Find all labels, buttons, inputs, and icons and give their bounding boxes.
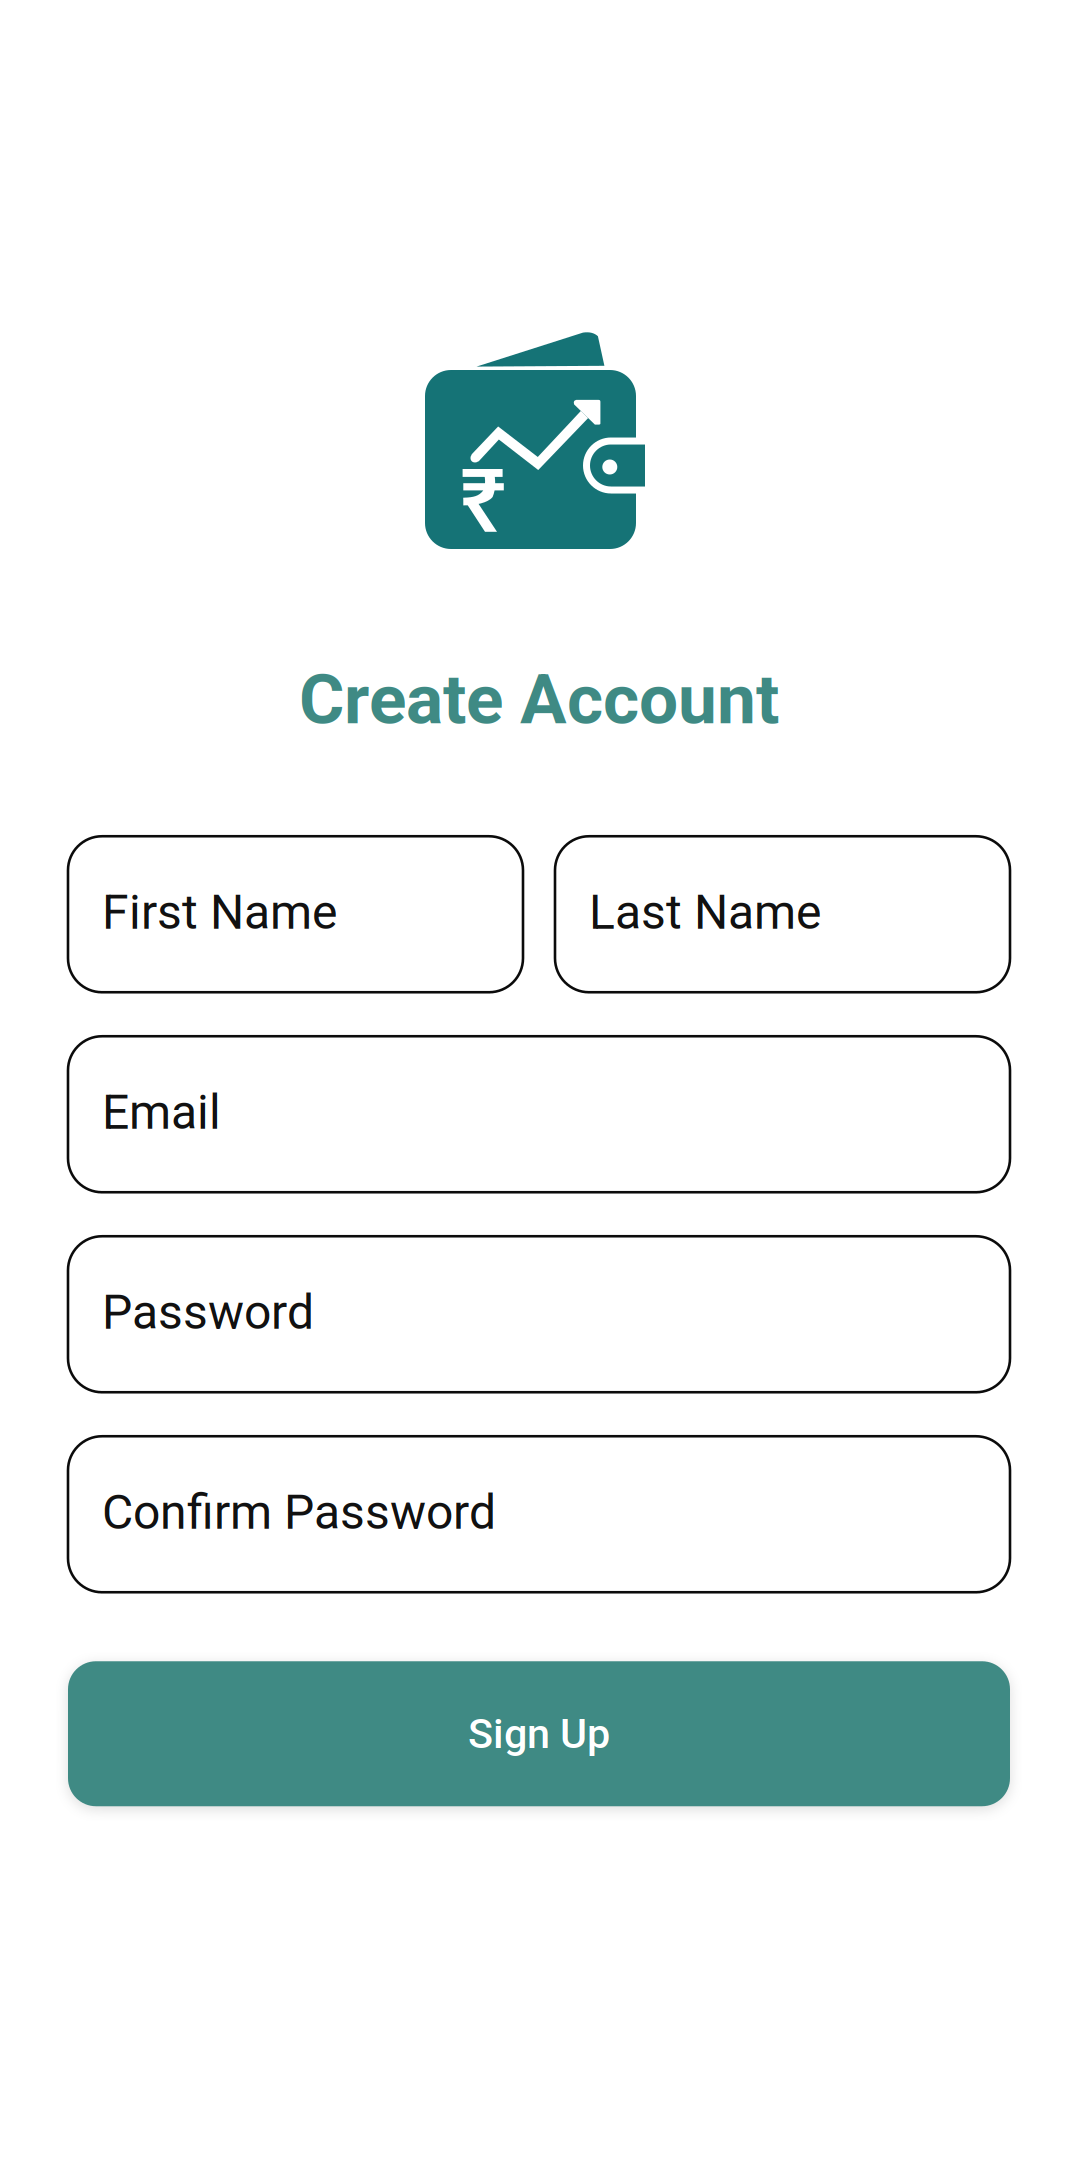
staticText: Password bbox=[102, 1284, 314, 1340]
staticText: Email bbox=[102, 1084, 221, 1140]
button[interactable]: Confirm Password bbox=[68, 1436, 1010, 1592]
staticText: Create Account bbox=[299, 659, 779, 740]
staticText: First Name bbox=[102, 884, 337, 940]
button[interactable]: Email bbox=[68, 1036, 1010, 1192]
staticText: Sign Up bbox=[468, 1709, 610, 1758]
button[interactable]: Password bbox=[68, 1236, 1010, 1392]
staticText: Confirm Password bbox=[102, 1484, 496, 1540]
staticText: Last Name bbox=[589, 884, 821, 940]
button[interactable]: Sign Up bbox=[68, 1661, 1010, 1806]
button[interactable]: First Name bbox=[68, 836, 523, 992]
button[interactable]: Last Name bbox=[555, 836, 1010, 992]
